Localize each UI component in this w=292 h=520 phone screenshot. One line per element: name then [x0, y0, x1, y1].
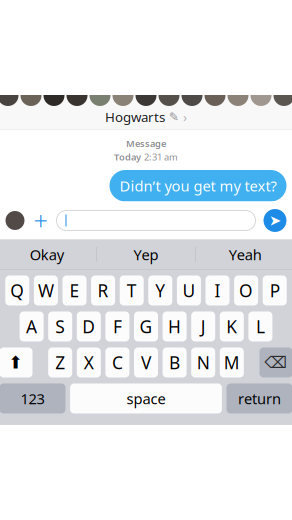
button[interactable]: W	[34, 275, 58, 305]
staticText: Y	[155, 279, 165, 302]
staticText: R	[98, 279, 109, 302]
staticText: 2:31 am	[144, 151, 178, 163]
button[interactable]: N	[191, 347, 215, 377]
staticText: M	[224, 351, 240, 374]
staticText: F	[113, 315, 122, 338]
button[interactable]: I	[205, 275, 229, 305]
staticText: J	[201, 315, 206, 338]
staticText: ⌫	[264, 353, 287, 372]
button[interactable]: space	[70, 383, 222, 413]
staticText: A	[26, 315, 37, 338]
staticText: 123	[20, 389, 44, 408]
button[interactable]: R	[91, 275, 115, 305]
staticText: Hogwarts	[105, 108, 165, 126]
button[interactable]: Yep	[97, 240, 195, 269]
button[interactable]: E	[62, 275, 86, 305]
button[interactable]: Okay	[0, 240, 96, 269]
staticText: U	[182, 279, 195, 302]
button[interactable]: Shift	[0, 347, 32, 377]
staticText: Q	[10, 279, 24, 302]
button[interactable]: C	[105, 347, 129, 377]
button[interactable]: 123	[0, 383, 65, 413]
button[interactable]: V	[134, 347, 158, 377]
button[interactable]	[56, 210, 255, 230]
button[interactable]: F	[105, 311, 129, 341]
staticText: +	[33, 204, 47, 237]
button[interactable]: Add attachment	[32, 209, 48, 231]
staticText: N	[197, 351, 210, 374]
button[interactable]: Profile	[5, 211, 24, 230]
button[interactable]: J	[191, 311, 215, 341]
button[interactable]: U	[177, 275, 201, 305]
staticText: L	[256, 315, 265, 338]
staticText: T	[127, 279, 137, 302]
button[interactable]: Z	[48, 347, 72, 377]
staticText: C	[112, 351, 123, 374]
staticText: S	[55, 315, 65, 338]
staticText: Okay	[30, 245, 64, 264]
staticText: ›	[183, 108, 187, 126]
button[interactable]: X	[77, 347, 101, 377]
staticText: Message	[126, 137, 166, 150]
staticText: O	[239, 279, 253, 302]
button[interactable]: Q	[5, 275, 29, 305]
button[interactable]: Hogwarts	[105, 108, 187, 126]
button[interactable]: M	[220, 347, 244, 377]
staticText: Didn’t you get my text?	[119, 176, 276, 195]
staticText: X	[84, 351, 94, 374]
button[interactable]: A	[20, 311, 44, 341]
staticText: W	[38, 279, 54, 302]
staticText: ✎	[169, 110, 179, 124]
button[interactable]: Send	[263, 209, 286, 232]
staticText: Z	[55, 351, 65, 374]
button[interactable]: Yeah	[196, 240, 292, 269]
staticText: K	[226, 315, 237, 338]
staticText: Today	[114, 151, 141, 163]
button[interactable]: T	[120, 275, 144, 305]
staticText: G	[139, 315, 152, 338]
staticText: I	[214, 279, 220, 302]
button[interactable]: B	[163, 347, 187, 377]
staticText: H	[168, 315, 181, 338]
button[interactable]: Delete	[259, 347, 292, 377]
staticText: Yep	[133, 245, 158, 264]
staticText: return	[238, 389, 281, 408]
button[interactable]: D	[77, 311, 101, 341]
staticText: ⬆	[8, 353, 23, 372]
staticText: V	[141, 351, 151, 374]
button[interactable]: O	[234, 275, 258, 305]
staticText: D	[82, 315, 95, 338]
staticText: space	[126, 389, 165, 408]
staticText: P	[270, 279, 280, 302]
staticText: ➤	[269, 212, 281, 229]
button[interactable]: H	[163, 311, 187, 341]
button[interactable]: S	[48, 311, 72, 341]
button[interactable]: G	[134, 311, 158, 341]
button[interactable]: return	[226, 383, 292, 413]
button[interactable]: P	[263, 275, 287, 305]
staticText: E	[69, 279, 79, 302]
staticText: Yeah	[229, 245, 262, 264]
button[interactable]: Y	[148, 275, 172, 305]
button[interactable]: K	[220, 311, 244, 341]
button[interactable]: L	[248, 311, 272, 341]
staticText: B	[169, 351, 180, 374]
